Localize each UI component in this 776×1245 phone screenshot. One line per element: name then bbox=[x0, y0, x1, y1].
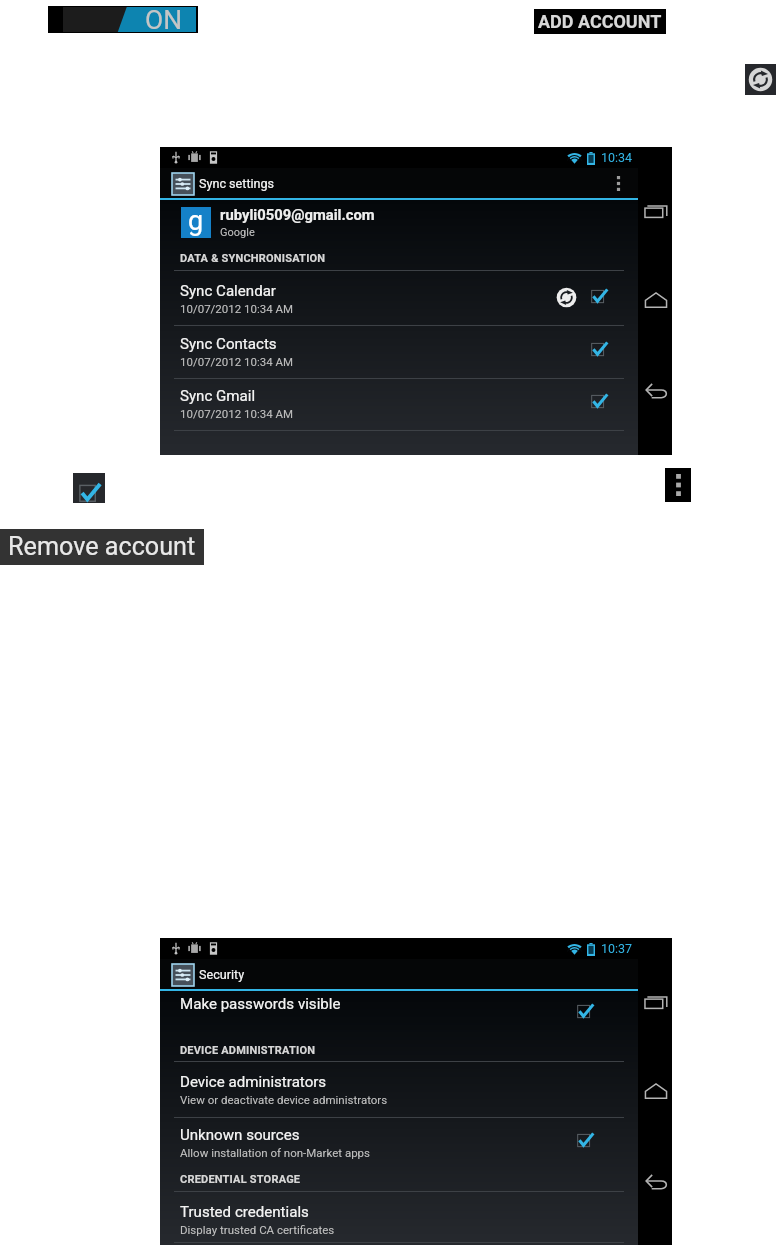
staticText: Make passwords visible bbox=[180, 995, 341, 1013]
staticText: Display trusted CA certificates bbox=[180, 1223, 335, 1236]
staticText: ON bbox=[145, 5, 182, 32]
staticText: Remove account bbox=[8, 532, 196, 562]
staticText: Security bbox=[199, 967, 245, 982]
button[interactable]: Home bbox=[644, 1083, 668, 1099]
staticText: ADD ACCOUNT bbox=[538, 11, 662, 32]
staticText: Trusted credentials bbox=[180, 1203, 309, 1221]
button[interactable]: More options bbox=[604, 168, 632, 198]
staticText: Sync Calendar bbox=[180, 282, 276, 300]
button[interactable]: Make passwords visible bbox=[160, 991, 638, 1031]
staticText: 10:34 bbox=[601, 150, 633, 165]
staticText: 10/07/2012 10:34 AM bbox=[180, 355, 294, 368]
staticText: Sync settings bbox=[199, 176, 275, 191]
button[interactable]: Back bbox=[644, 382, 668, 398]
staticText: Allow installation of non-Market apps bbox=[180, 1146, 370, 1159]
staticText: Sync Contacts bbox=[180, 335, 277, 353]
button[interactable]: Recents bbox=[644, 203, 668, 219]
staticText: Device administrators bbox=[180, 1073, 327, 1091]
button[interactable]: Device administrators bbox=[160, 1066, 638, 1111]
staticText: Google bbox=[220, 226, 255, 239]
staticText: DEVICE ADMINISTRATION bbox=[180, 1044, 316, 1057]
staticText: 10/07/2012 10:34 AM bbox=[180, 407, 294, 420]
button[interactable]: Recents bbox=[644, 994, 668, 1010]
staticText: DATA & SYNCHRONISATION bbox=[180, 252, 326, 265]
staticText: rubyli0509@gmail.com bbox=[220, 206, 375, 223]
staticText: 10:37 bbox=[601, 941, 633, 956]
staticText: g bbox=[188, 205, 204, 236]
button[interactable]: g bbox=[160, 200, 638, 245]
button[interactable]: Home bbox=[644, 292, 668, 308]
button[interactable]: More options bbox=[665, 468, 691, 502]
button[interactable]: ADD ACCOUNT bbox=[534, 9, 666, 34]
button[interactable]: Sync Gmail bbox=[160, 380, 638, 424]
button[interactable]: Sync bbox=[745, 64, 776, 95]
button[interactable]: Unknown sources bbox=[160, 1119, 638, 1164]
button[interactable]: ON bbox=[48, 6, 198, 33]
staticText: Sync Gmail bbox=[180, 387, 256, 405]
staticText: CREDENTIAL STORAGE bbox=[180, 1173, 301, 1186]
button[interactable]: Sync Contacts bbox=[160, 328, 638, 372]
staticText: View or deactivate device administrators bbox=[180, 1093, 388, 1106]
button[interactable]: Trusted credentials bbox=[160, 1196, 638, 1241]
staticText: Unknown sources bbox=[180, 1126, 300, 1144]
button[interactable]: Checked checkbox bbox=[73, 473, 105, 503]
button[interactable]: Remove account bbox=[0, 529, 204, 565]
button[interactable]: Back bbox=[644, 1173, 668, 1189]
button[interactable]: Sync Calendar bbox=[160, 275, 638, 319]
staticText: 10/07/2012 10:34 AM bbox=[180, 302, 294, 315]
